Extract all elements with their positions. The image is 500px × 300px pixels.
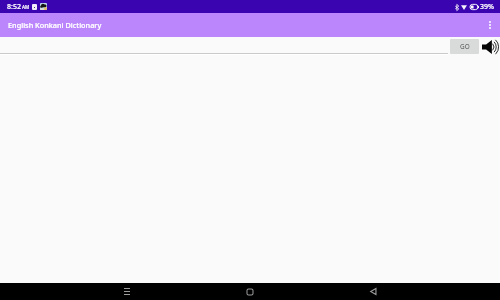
staticText: AM [22,4,30,10]
staticText: 8:52 [7,2,21,12]
button[interactable]: Home [239,283,260,300]
button[interactable]: Speak [482,40,499,54]
button[interactable]: Recent apps [116,283,137,300]
staticText: GO [460,42,470,51]
staticText: English Konkani Dictionary [8,20,102,30]
button[interactable] [0,39,448,55]
button[interactable]: Back [363,283,384,300]
button[interactable]: GO [450,39,479,54]
staticText: 39% [480,2,494,12]
button[interactable]: More options [479,13,500,37]
